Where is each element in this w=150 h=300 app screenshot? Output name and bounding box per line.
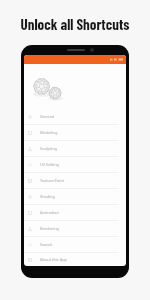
button[interactable]: Sculpting <box>24 141 126 156</box>
button[interactable]: UV Editing <box>24 157 126 172</box>
staticText: Texture Paint <box>40 178 64 183</box>
button[interactable]: Animation <box>24 205 126 220</box>
button[interactable]: Shading <box>24 189 126 204</box>
other: Sculpting <box>28 147 32 151</box>
staticText: Unlock all Shortcuts <box>0 15 150 33</box>
staticText: Rendering <box>40 226 60 231</box>
staticText: Sculpting <box>40 146 58 151</box>
other: Shading <box>28 195 32 199</box>
button[interactable]: About this App <box>24 253 126 266</box>
button[interactable]: Texture Paint <box>24 173 126 188</box>
button[interactable]: General <box>24 109 126 124</box>
other: Animation <box>28 211 32 215</box>
other: About this App <box>28 258 32 262</box>
other: Search <box>28 243 32 247</box>
button[interactable]: Search <box>24 237 126 252</box>
button[interactable]: Modeling <box>24 125 126 140</box>
staticText: Shading <box>40 194 55 199</box>
staticText: Modeling <box>40 130 58 135</box>
other: Modeling <box>28 131 32 135</box>
staticText: About this App <box>40 257 68 262</box>
other: Rendering <box>28 227 32 231</box>
staticText: Animation <box>40 210 59 215</box>
staticText: UV Editing <box>40 162 59 167</box>
other: Texture Paint <box>28 179 32 183</box>
staticText: Search <box>40 242 53 247</box>
button[interactable]: Rendering <box>24 221 126 236</box>
other: UV Editing <box>28 163 32 167</box>
staticText: General <box>40 114 55 119</box>
other: General <box>28 115 32 119</box>
